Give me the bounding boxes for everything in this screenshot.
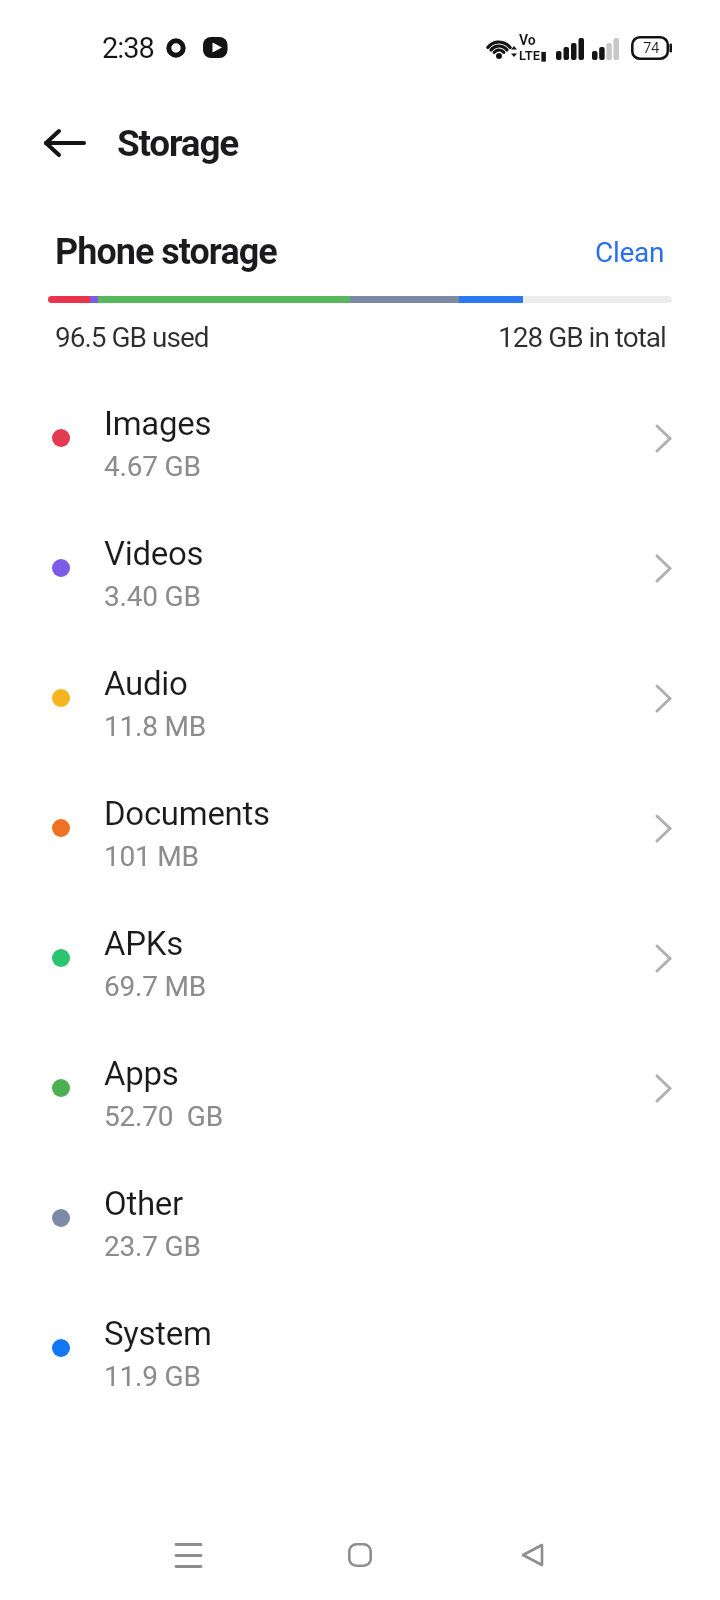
button[interactable] xyxy=(38,121,92,165)
staticText: 128 GB in total xyxy=(498,321,666,354)
button[interactable]: System xyxy=(0,1288,720,1418)
button[interactable] xyxy=(336,1531,384,1579)
staticText: System xyxy=(104,1314,212,1353)
staticText: Audio xyxy=(104,664,188,703)
staticText: 2:38 xyxy=(102,31,154,65)
staticText: Other xyxy=(104,1184,183,1223)
button[interactable]: Images xyxy=(0,378,720,508)
staticText: Clean xyxy=(595,236,665,269)
staticText: LTE▮ xyxy=(519,48,548,63)
staticText: 69.7 MB xyxy=(104,970,207,1003)
staticText: 52.70 GB xyxy=(104,1100,223,1133)
staticText: 96.5 GB used xyxy=(55,321,209,354)
staticText: 4.67 GB xyxy=(104,450,201,483)
button[interactable]: Other xyxy=(0,1158,720,1288)
staticText: Videos xyxy=(104,534,204,573)
staticText: Apps xyxy=(104,1054,179,1093)
staticText: 11.8 MB xyxy=(104,710,207,743)
staticText: 74 xyxy=(643,39,659,57)
button[interactable]: Audio xyxy=(0,638,720,768)
button[interactable]: Documents xyxy=(0,768,720,898)
staticText: APKs xyxy=(104,924,183,963)
button[interactable]: Clean xyxy=(595,236,665,269)
staticText: 23.7 GB xyxy=(104,1230,201,1263)
staticText: Images xyxy=(104,404,212,443)
button[interactable] xyxy=(164,1531,212,1579)
staticText: Documents xyxy=(104,794,270,833)
staticText: 101 MB xyxy=(104,840,199,873)
staticText: 3.40 GB xyxy=(104,580,201,613)
staticText: Storage xyxy=(117,122,239,165)
button[interactable]: APKs xyxy=(0,898,720,1028)
button[interactable] xyxy=(508,1531,556,1579)
staticText: 11.9 GB xyxy=(104,1360,201,1393)
staticText: Vo xyxy=(519,32,536,48)
button[interactable]: Apps xyxy=(0,1028,720,1158)
staticText: Phone storage xyxy=(55,231,277,273)
button[interactable]: Videos xyxy=(0,508,720,638)
